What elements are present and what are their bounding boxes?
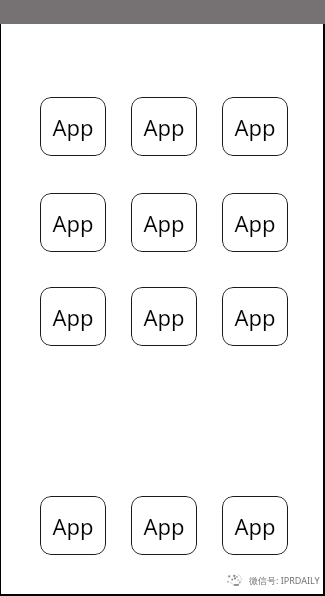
staticText: App [143, 511, 185, 541]
button[interactable]: App [131, 496, 197, 555]
button[interactable]: App [40, 97, 106, 156]
button[interactable]: App [222, 287, 288, 346]
button[interactable]: App [40, 496, 106, 555]
staticText: 微信号: IPRDAILY [249, 574, 320, 586]
button[interactable]: App [40, 287, 106, 346]
staticText: App [52, 112, 94, 142]
staticText: App [234, 112, 276, 142]
button[interactable]: App [222, 97, 288, 156]
button[interactable]: App [222, 496, 288, 555]
staticText: App [143, 208, 185, 238]
staticText: App [52, 208, 94, 238]
button[interactable]: App [222, 193, 288, 252]
staticText: App [143, 302, 185, 332]
button[interactable]: App [131, 287, 197, 346]
staticText: App [52, 302, 94, 332]
button[interactable]: App [131, 193, 197, 252]
staticText: App [143, 112, 185, 142]
staticText: App [234, 511, 276, 541]
staticText: App [52, 511, 94, 541]
staticText: App [234, 302, 276, 332]
button[interactable]: App [40, 193, 106, 252]
staticText: App [234, 208, 276, 238]
button[interactable]: App [131, 97, 197, 156]
